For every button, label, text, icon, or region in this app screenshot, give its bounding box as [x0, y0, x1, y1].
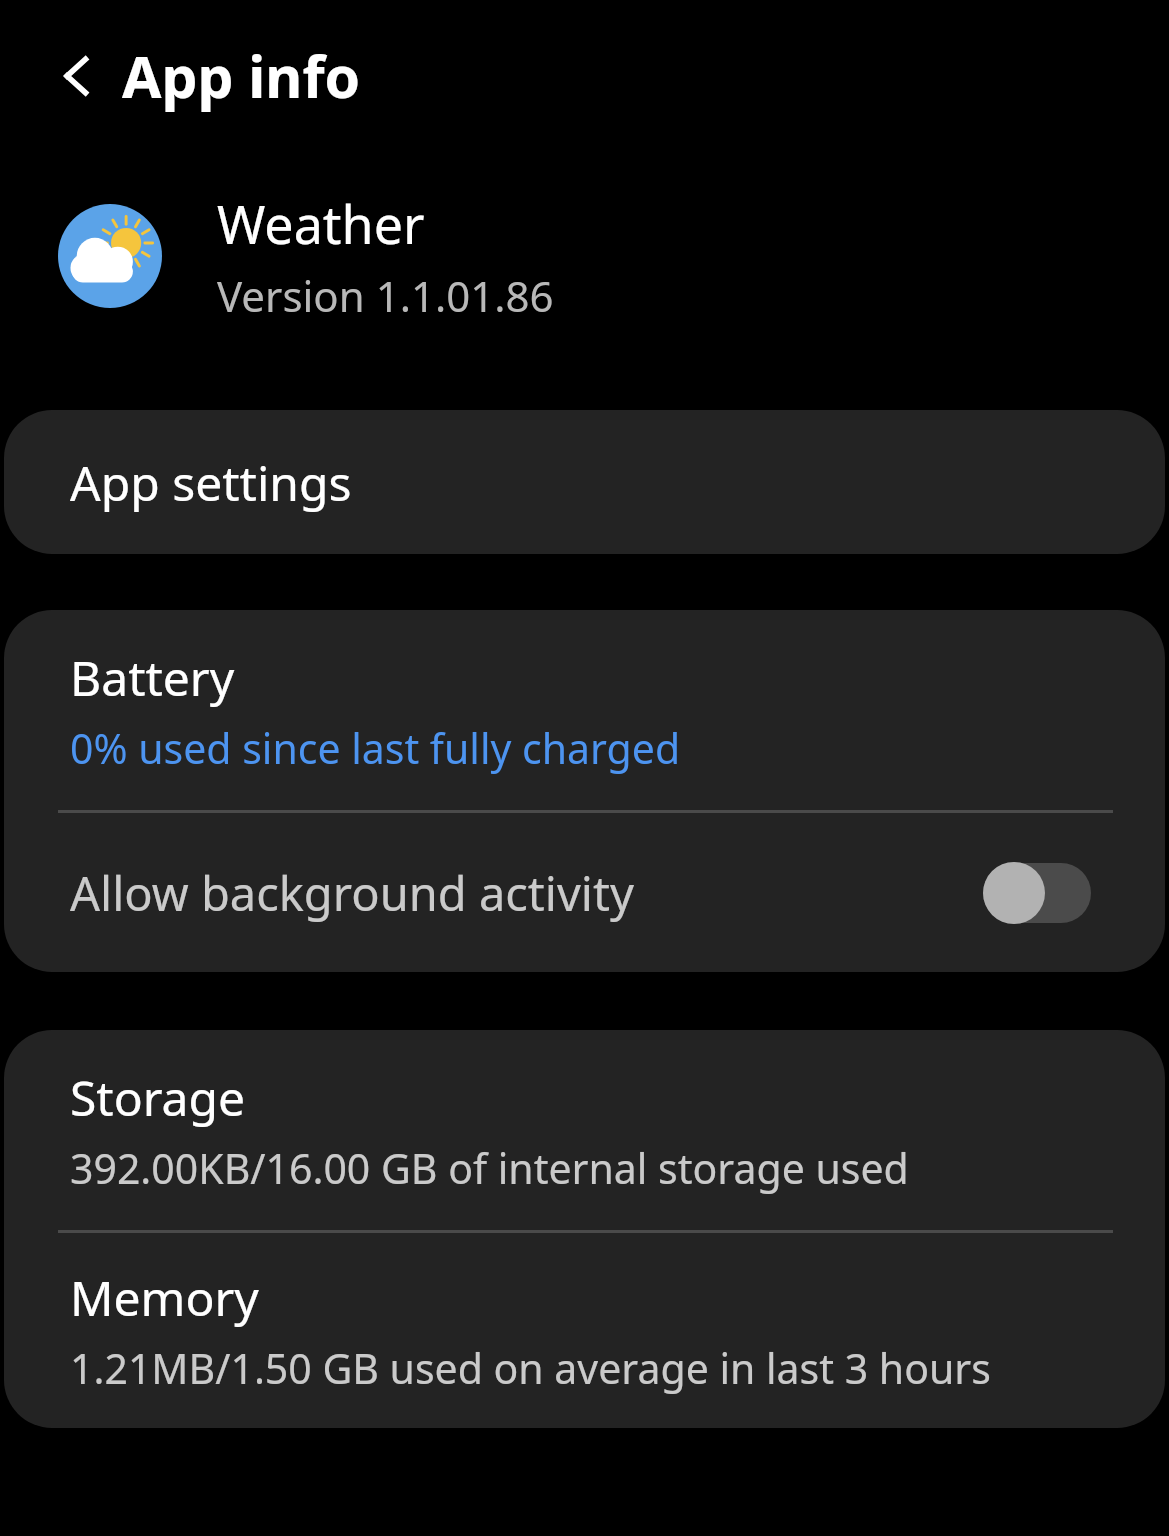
staticText: 392.00KB/16.00 GB of internal storage us… — [70, 1140, 909, 1196]
button[interactable]: Allow background activity — [4, 813, 1165, 972]
staticText: Version 1.1.01.86 — [217, 267, 554, 324]
staticText: 0% used since last fully charged — [70, 720, 681, 776]
button[interactable]: Memory — [4, 1233, 1165, 1428]
staticText: Storage — [70, 1065, 246, 1130]
button[interactable]: Back — [46, 44, 110, 108]
staticText: Allow background activity — [70, 861, 983, 925]
staticText: App settings — [70, 450, 352, 515]
staticText: App info — [122, 37, 361, 115]
staticText: 1.21MB/1.50 GB used on average in last 3… — [70, 1340, 991, 1396]
staticText: Memory — [70, 1265, 259, 1330]
staticText: Battery — [70, 645, 235, 710]
button[interactable]: Storage — [4, 1030, 1165, 1230]
staticText: Weather — [217, 188, 425, 259]
button[interactable]: Battery — [4, 610, 1165, 810]
button[interactable]: App settings — [4, 410, 1165, 554]
